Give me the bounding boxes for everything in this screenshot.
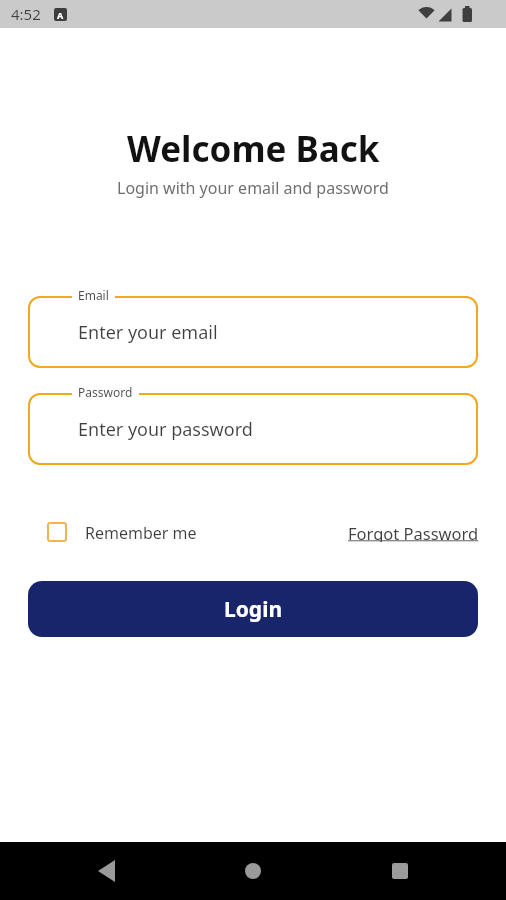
button[interactable] bbox=[82, 847, 130, 895]
staticText: Enter your password bbox=[78, 417, 253, 442]
staticText: Password bbox=[78, 384, 133, 400]
staticText: Remember me bbox=[85, 522, 197, 542]
button[interactable] bbox=[229, 847, 277, 895]
button[interactable]: Enter your password bbox=[28, 393, 478, 465]
button[interactable]: Forgot Password bbox=[348, 522, 479, 542]
staticText: Welcome Back bbox=[127, 125, 380, 173]
staticText: Email bbox=[78, 287, 109, 303]
button[interactable]: Remember me bbox=[47, 522, 197, 542]
button[interactable]: Enter your email bbox=[28, 296, 478, 368]
staticText: 4:52 bbox=[11, 4, 41, 24]
button[interactable]: Login bbox=[28, 581, 478, 637]
staticText: Login bbox=[224, 595, 283, 624]
staticText: Enter your email bbox=[78, 320, 218, 345]
staticText: Login with your email and password bbox=[117, 177, 389, 199]
staticText: A bbox=[57, 9, 64, 21]
button[interactable] bbox=[376, 847, 424, 895]
